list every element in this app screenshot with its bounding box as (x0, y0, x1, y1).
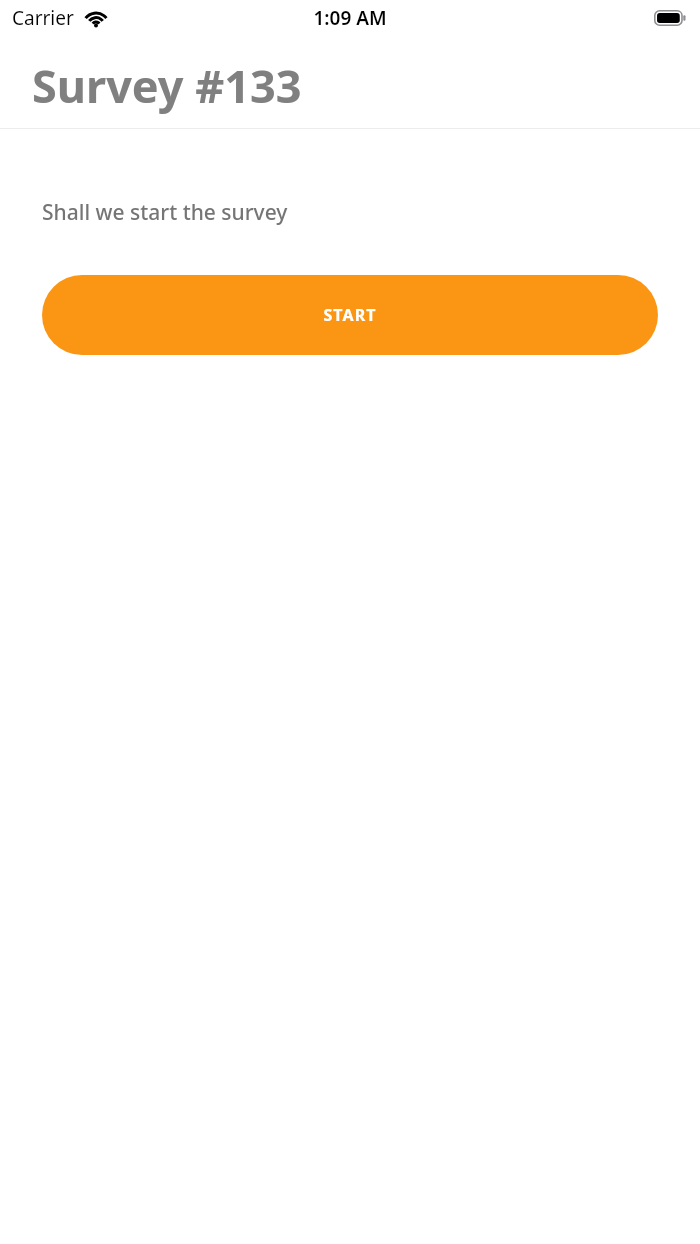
staticText: Carrier (12, 5, 74, 31)
staticText: Survey #133 (32, 55, 302, 116)
staticText: Shall we start the survey (42, 198, 288, 227)
button[interactable]: START (42, 275, 658, 355)
other: Wi-Fi signal (83, 8, 109, 27)
staticText: START (323, 304, 377, 326)
other: Battery full (654, 10, 686, 26)
staticText: 1:09 AM (313, 5, 387, 31)
